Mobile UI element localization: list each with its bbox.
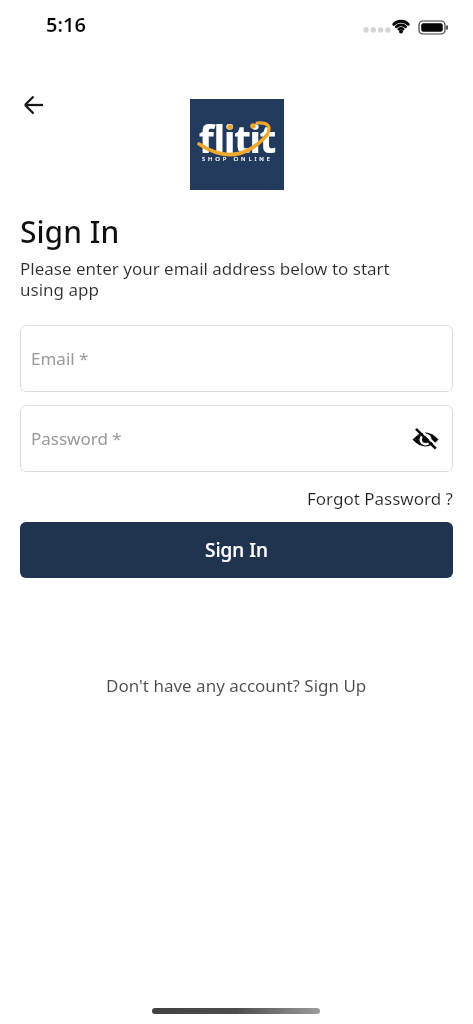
staticText: flitit bbox=[199, 112, 276, 164]
staticText: Please enter your email address below to… bbox=[20, 257, 390, 301]
staticText: Sign In bbox=[20, 211, 120, 252]
button[interactable]: Don't have any account? Sign Up bbox=[106, 674, 367, 697]
button[interactable] bbox=[411, 425, 439, 453]
staticText: Sign In bbox=[205, 537, 268, 563]
button[interactable]: Password * bbox=[20, 405, 453, 472]
staticText: Password * bbox=[31, 427, 122, 450]
button[interactable]: Forgot Password ? bbox=[307, 487, 453, 510]
button[interactable]: Email * bbox=[20, 325, 453, 392]
button[interactable] bbox=[18, 89, 50, 121]
staticText: SHOP ONLINE bbox=[202, 155, 273, 163]
button[interactable]: Sign In bbox=[20, 522, 453, 578]
staticText: 5:16 bbox=[46, 11, 86, 38]
staticText: Email * bbox=[31, 347, 89, 370]
